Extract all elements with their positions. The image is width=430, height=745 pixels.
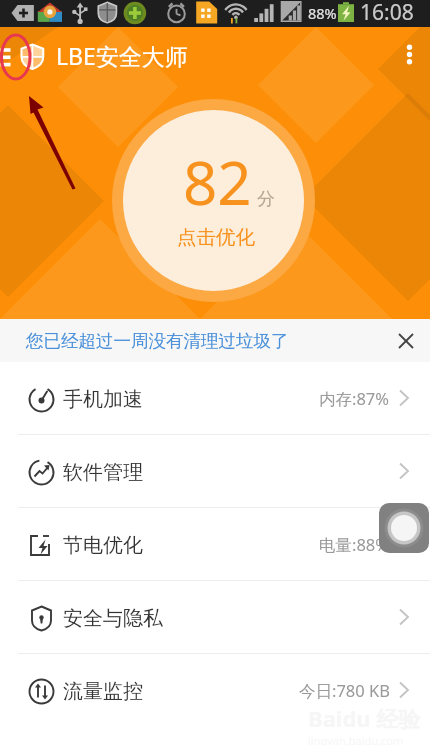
staticText: 节电优化 [63, 533, 143, 558]
button[interactable]: Assistive touch [379, 503, 429, 553]
staticText: 安全与隐私 [63, 606, 163, 631]
staticText: 点击优化 [177, 225, 255, 250]
staticText: 您已经超过一周没有清理过垃圾了 [26, 330, 289, 352]
button[interactable]: 软件管理 [0, 435, 430, 507]
button[interactable]: 手机加速 [0, 362, 430, 434]
button[interactable]: 节电优化 [0, 508, 430, 580]
button[interactable]: More options [386, 27, 430, 75]
staticText: 软件管理 [63, 460, 143, 485]
staticText: 16:08 [360, 0, 414, 25]
button[interactable]: Close [382, 319, 430, 362]
button[interactable]: 安全与隐私 [0, 581, 430, 653]
staticText: 手机加速 [63, 387, 143, 412]
staticText: Baidu 经验 [308, 703, 421, 733]
staticText: 今日:780 KB [299, 679, 390, 702]
staticText: 82 [183, 141, 252, 223]
button[interactable]: 82 [112, 99, 315, 302]
staticText: 内存:87% [319, 387, 390, 410]
staticText: 流量监控 [63, 679, 143, 704]
button[interactable]: 流量监控 [0, 654, 430, 726]
button[interactable]: Menu [0, 29, 48, 73]
staticText: 电量:88% [319, 533, 390, 556]
staticText: 分 [257, 188, 275, 211]
staticText: 88% [308, 3, 337, 23]
staticText: LBE安全大师 [56, 40, 188, 71]
